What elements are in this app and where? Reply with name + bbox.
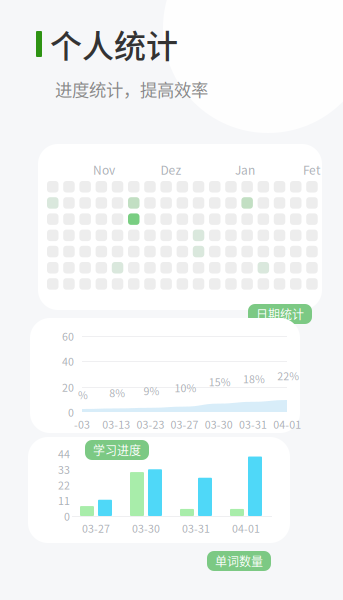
staticText: 个人统计 xyxy=(50,21,178,67)
staticText: 11 xyxy=(58,493,70,508)
staticText: 22 xyxy=(58,477,70,492)
staticText: 03-13 xyxy=(102,416,130,432)
staticText: 03-30 xyxy=(132,520,160,536)
staticText: 进度统计，提高效率 xyxy=(55,76,208,102)
staticText: 8% xyxy=(109,385,125,400)
staticText: -03 xyxy=(74,416,90,432)
staticText: 33 xyxy=(58,461,70,477)
staticText: 03-27 xyxy=(171,416,199,432)
staticText: 04-01 xyxy=(232,520,260,536)
staticText: 10% xyxy=(175,380,197,395)
staticText: 18% xyxy=(243,371,265,386)
staticText: 04-01 xyxy=(273,416,301,432)
staticText: 40 xyxy=(62,353,74,369)
staticText: 9% xyxy=(143,383,159,398)
staticText: 03-27 xyxy=(82,520,110,536)
staticText: 03-31 xyxy=(182,520,210,536)
staticText: 20 xyxy=(62,379,74,395)
button[interactable]: 日期统计 xyxy=(248,304,312,324)
staticText: % xyxy=(78,387,88,402)
staticText: 03-30 xyxy=(205,416,233,432)
button[interactable]: 学习进度 xyxy=(85,440,149,460)
staticText: 学习进度 xyxy=(93,441,141,459)
staticText: 60 xyxy=(62,328,74,344)
staticText: 15% xyxy=(209,374,231,389)
staticText: 03-31 xyxy=(239,416,267,432)
staticText: Nov xyxy=(93,161,115,178)
staticText: Jan xyxy=(235,161,255,178)
staticText: 0 xyxy=(68,404,74,420)
staticText: 03-23 xyxy=(136,416,164,432)
staticText: 44 xyxy=(58,446,70,461)
staticText: 日期统计 xyxy=(256,305,304,323)
button[interactable]: 单词数量 xyxy=(207,551,271,571)
staticText: 0 xyxy=(64,508,70,524)
staticText: Dez xyxy=(160,161,181,178)
staticText: Fet xyxy=(303,161,321,178)
staticText: 单词数量 xyxy=(215,552,263,570)
staticText: 22% xyxy=(277,368,299,383)
